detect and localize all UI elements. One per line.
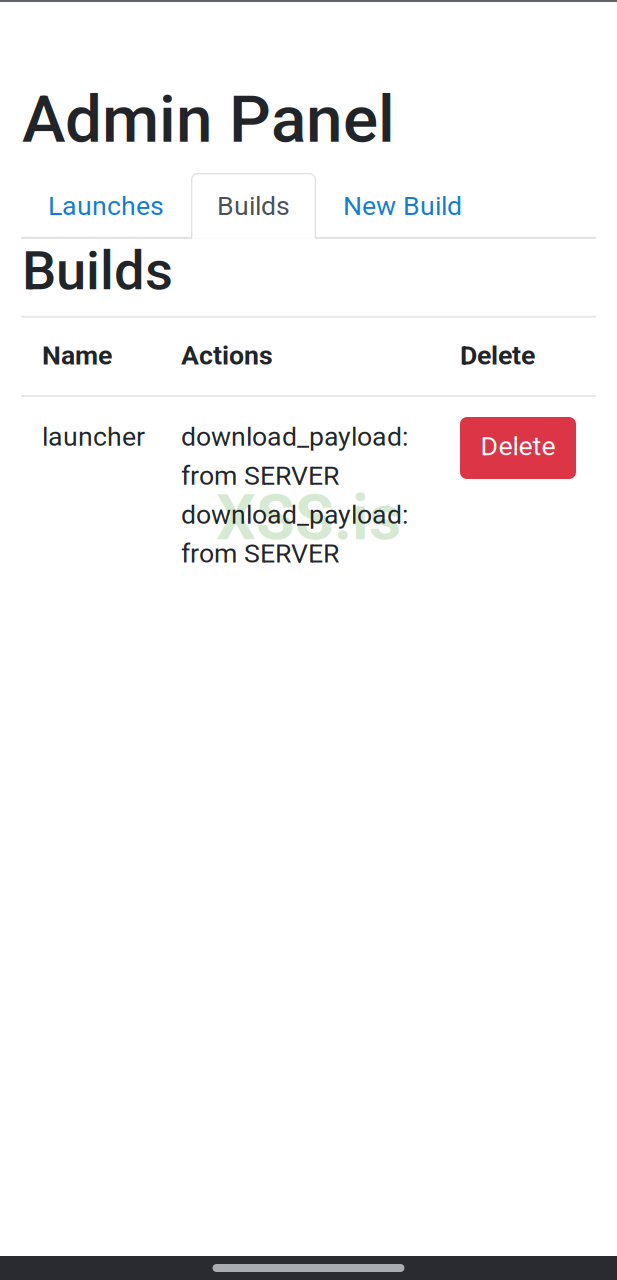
staticText: Actions — [181, 340, 273, 371]
staticText: Builds — [217, 190, 290, 222]
staticText: from SERVER — [181, 460, 339, 491]
staticText: download_payload: — [181, 421, 408, 452]
button[interactable]: Delete — [460, 417, 576, 479]
staticText: New Build — [343, 190, 462, 222]
staticText: download_payload: — [181, 499, 408, 530]
staticText: launcher — [42, 421, 145, 452]
staticText: Name — [42, 340, 112, 371]
staticText: Builds — [22, 239, 173, 302]
staticText: Launches — [48, 190, 164, 222]
button[interactable]: Builds — [191, 173, 316, 239]
staticText: from SERVER — [181, 538, 339, 569]
button[interactable]: Launches — [21, 173, 191, 239]
staticText: Delete — [480, 430, 555, 462]
staticText: Delete — [460, 340, 535, 371]
button[interactable]: New Build — [316, 173, 489, 239]
staticText: Admin Panel — [22, 81, 395, 158]
